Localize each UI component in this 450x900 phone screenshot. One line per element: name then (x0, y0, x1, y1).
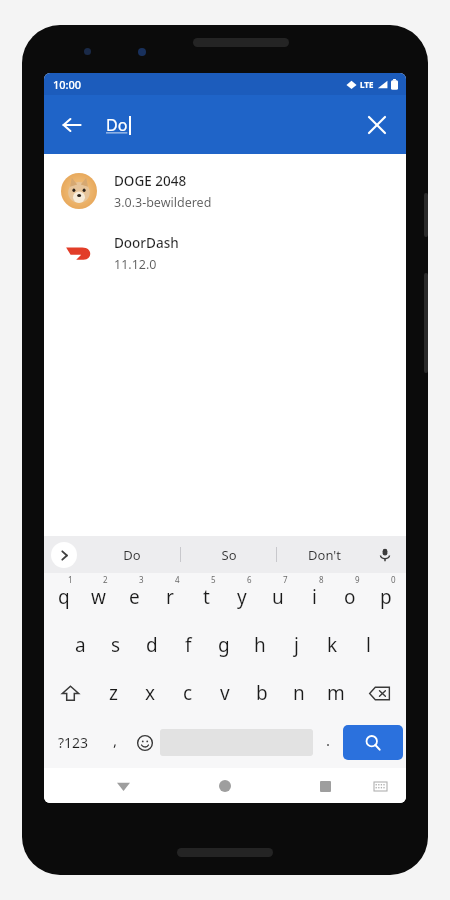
staticText: LTE (360, 79, 374, 90)
staticText: o (344, 584, 356, 610)
staticText: e (129, 584, 140, 610)
button[interactable]: 8 (296, 573, 332, 621)
staticText: x (145, 680, 156, 706)
button[interactable]: Expand suggestions (51, 542, 77, 568)
staticText: p (380, 584, 392, 610)
staticText: b (256, 680, 268, 706)
staticText: h (254, 632, 266, 658)
staticText: l (366, 632, 371, 658)
button[interactable]: d (134, 621, 170, 669)
button[interactable]: Home (208, 769, 242, 803)
button[interactable]: Shift (46, 669, 95, 717)
staticText: a (75, 632, 86, 658)
staticText: DOGE 2048 (114, 172, 187, 190)
button[interactable]: ?123 (47, 717, 100, 768)
staticText: c (183, 680, 193, 706)
button[interactable]: . (313, 717, 343, 768)
staticText: y (237, 584, 247, 610)
staticText: 6 (247, 574, 252, 585)
staticText: Don't (308, 546, 341, 564)
staticText: , (113, 730, 118, 750)
staticText: 7 (283, 574, 288, 585)
button[interactable]: x (132, 669, 169, 717)
button[interactable]: h (242, 621, 278, 669)
button[interactable]: 7 (260, 573, 296, 621)
staticText: m (327, 680, 345, 706)
button[interactable]: Back (51, 104, 93, 146)
staticText: j (294, 632, 299, 658)
staticText: s (111, 632, 121, 658)
staticText: Do (106, 114, 128, 136)
staticText: 5 (211, 574, 216, 585)
button[interactable]: Clear search (356, 104, 398, 146)
button[interactable]: 9 (332, 573, 368, 621)
button[interactable]: 2 (81, 573, 116, 621)
button[interactable]: 3 (116, 573, 152, 621)
button[interactable]: n (280, 669, 317, 717)
button[interactable]: Emoji (130, 717, 160, 768)
button[interactable]: 4 (152, 573, 188, 621)
button[interactable]: j (278, 621, 314, 669)
staticText: t (203, 584, 210, 610)
staticText: z (109, 680, 118, 706)
button[interactable]: Backspace (354, 669, 404, 717)
button[interactable]: f (170, 621, 206, 669)
button[interactable]: So (181, 536, 276, 573)
button[interactable]: b (243, 669, 280, 717)
button[interactable]: Do (84, 536, 180, 573)
staticText: 9 (355, 574, 360, 585)
staticText: . (326, 730, 331, 750)
staticText: 3 (139, 574, 144, 585)
button[interactable]: Switch keyboard (366, 772, 394, 800)
staticText: w (91, 584, 106, 610)
staticText: u (272, 584, 284, 610)
button[interactable]: 1 (46, 573, 81, 621)
staticText: ?123 (58, 733, 89, 752)
button[interactable]: Search (343, 725, 403, 760)
staticText: 4 (175, 574, 180, 585)
staticText: DoorDash (114, 234, 179, 252)
button[interactable]: m (317, 669, 354, 717)
button[interactable]: k (314, 621, 350, 669)
button[interactable]: Recents (308, 769, 342, 803)
staticText: Do (123, 546, 141, 564)
staticText: 1 (68, 574, 73, 585)
staticText: 2 (103, 574, 108, 585)
button[interactable]: z (95, 669, 132, 717)
staticText: n (293, 680, 305, 706)
staticText: 8 (319, 574, 324, 585)
button[interactable]: 0 (368, 573, 404, 621)
staticText: 11.12.0 (114, 256, 157, 273)
button[interactable]: 6 (224, 573, 260, 621)
button[interactable]: Don't (277, 536, 372, 573)
button[interactable]: l (350, 621, 386, 669)
button[interactable]: 5 (188, 573, 224, 621)
button[interactable]: , (100, 717, 130, 768)
staticText: q (58, 584, 70, 610)
staticText: v (220, 680, 230, 706)
button[interactable]: g (206, 621, 242, 669)
staticText: i (312, 584, 317, 610)
staticText: 3.0.3-bewildered (114, 194, 212, 211)
button[interactable]: Voice input (372, 542, 398, 568)
button[interactable]: c (169, 669, 206, 717)
staticText: d (146, 632, 158, 658)
staticText: r (166, 584, 174, 610)
button[interactable]: v (206, 669, 243, 717)
button[interactable]: DOGE 2048 (44, 160, 406, 222)
button[interactable]: DoorDash (44, 222, 406, 284)
staticText: 0 (391, 574, 396, 585)
button[interactable]: s (98, 621, 134, 669)
staticText: f (185, 632, 192, 658)
staticText: So (221, 546, 237, 564)
staticText: g (218, 632, 230, 658)
button[interactable]: a (63, 621, 98, 669)
button[interactable]: Back (106, 769, 140, 803)
staticText: 10:00 (53, 77, 82, 92)
staticText: k (327, 632, 338, 658)
